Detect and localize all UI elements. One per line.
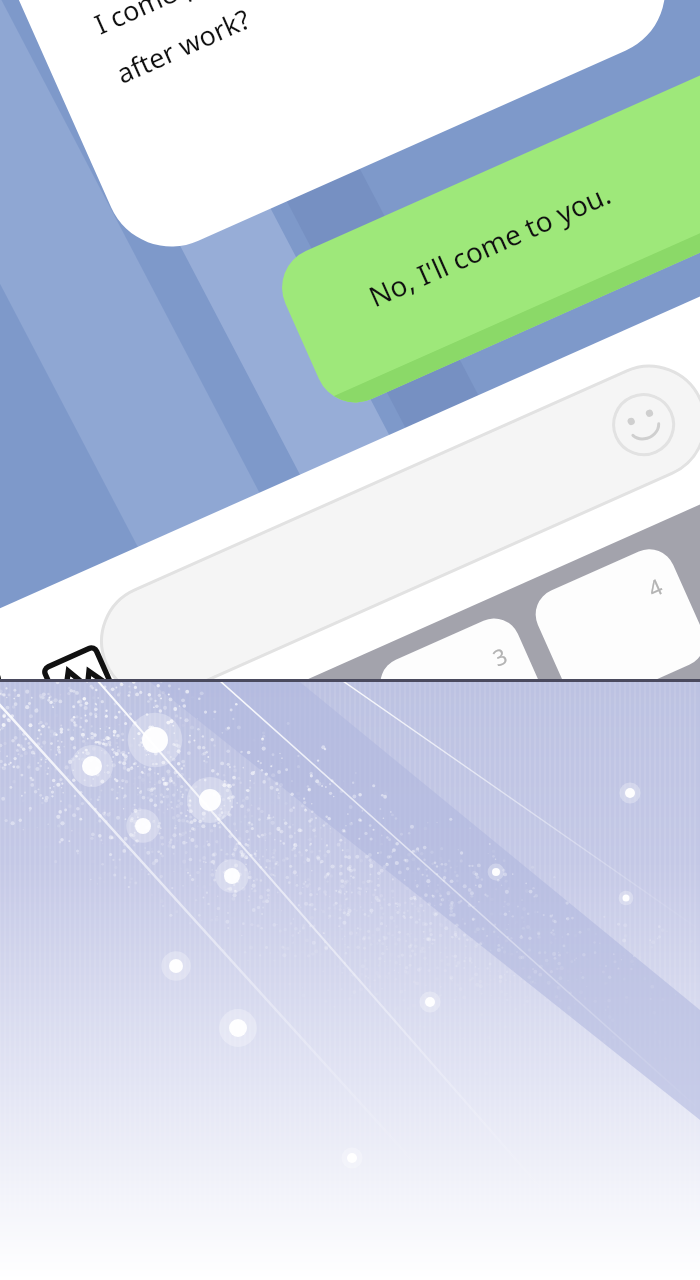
button[interactable]: Messaging app illustration bbox=[0, 0, 700, 1280]
